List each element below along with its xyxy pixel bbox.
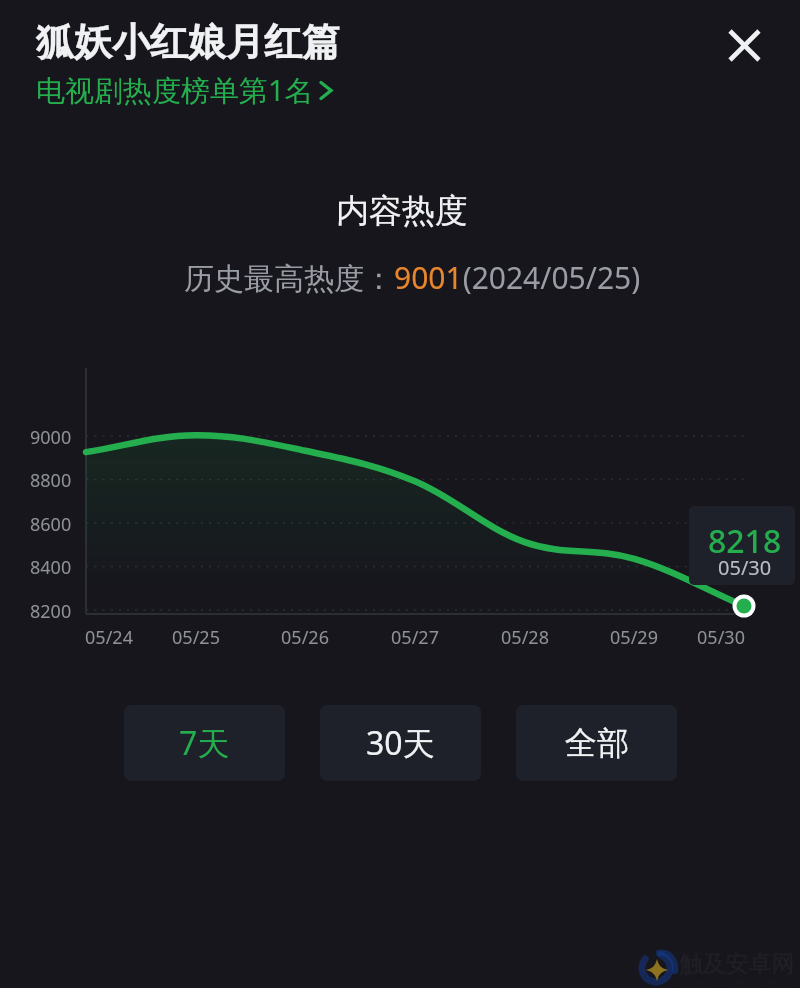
button[interactable]: 全部 — [516, 705, 677, 781]
staticText: 触及安卓网 — [679, 950, 794, 979]
staticText: 05/30 — [718, 554, 772, 581]
staticText: 05/30 — [697, 625, 745, 650]
staticText: 30天 — [366, 721, 435, 765]
staticText: 8600 — [30, 512, 72, 537]
staticText: 05/28 — [501, 625, 549, 650]
staticText: 05/29 — [610, 625, 658, 650]
staticText: 05/27 — [391, 625, 439, 650]
staticText: 历史最高热度：9001(2024/05/25) — [184, 257, 641, 298]
staticText: 全部 — [565, 723, 629, 763]
staticText: 内容热度 — [336, 190, 468, 232]
button[interactable]: 7天 — [124, 705, 285, 781]
staticText: 8800 — [30, 468, 72, 493]
staticText: 05/25 — [172, 625, 220, 650]
staticText: 8400 — [30, 555, 72, 580]
staticText: 9000 — [30, 425, 72, 450]
staticText: 电视剧热度榜单第1名 — [36, 70, 314, 110]
button[interactable]: 电视剧热度榜单第1名 — [36, 70, 333, 110]
staticText: 05/24 — [85, 625, 133, 650]
staticText: 7天 — [179, 721, 230, 765]
staticText: 8218 — [708, 519, 782, 563]
staticText: 狐妖小红娘月红篇 — [36, 18, 340, 66]
staticText: 8200 — [30, 599, 72, 624]
button[interactable]: 30天 — [320, 705, 481, 781]
button[interactable]: Close — [715, 16, 773, 74]
staticText: 05/26 — [281, 625, 329, 650]
